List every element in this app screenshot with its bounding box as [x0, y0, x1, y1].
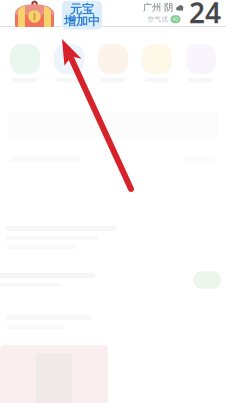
button[interactable]: App shortcut — [186, 44, 216, 82]
button[interactable]: App shortcut — [10, 44, 40, 82]
staticText: 42 — [172, 16, 178, 23]
button[interactable]: 元宝 — [62, 1, 102, 29]
staticText: 24 — [189, 0, 221, 31]
button[interactable]: App shortcut — [142, 44, 172, 82]
staticText: 元宝 — [70, 2, 94, 17]
button[interactable]: App shortcut — [54, 44, 84, 82]
button[interactable]: 广州 阴 — [143, 0, 226, 31]
staticText: 增加中 — [64, 14, 100, 28]
button[interactable]: Treasure chest reward — [13, 0, 57, 28]
staticText: 空气优 — [147, 15, 168, 23]
button[interactable]: App shortcut — [98, 44, 128, 82]
staticText: 广州 阴 — [143, 2, 173, 13]
